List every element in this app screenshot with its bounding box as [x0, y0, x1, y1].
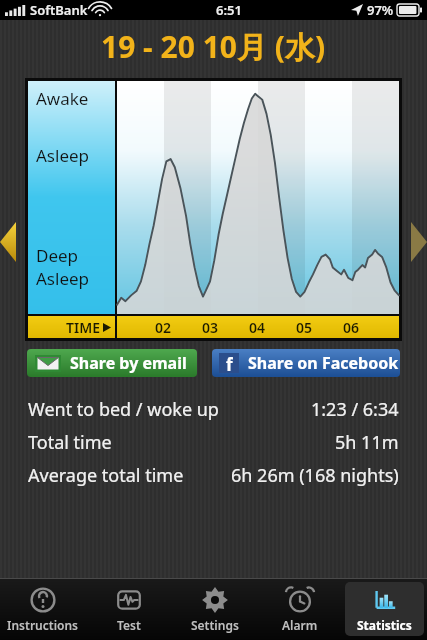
staticText: Statistics: [357, 617, 412, 633]
button[interactable]: Previous night: [0, 222, 16, 262]
staticText: Alarm: [282, 617, 318, 633]
staticText: 1:23 / 6:34: [311, 397, 399, 422]
staticText: Test: [117, 617, 141, 633]
staticText: 03: [202, 318, 219, 337]
staticText: Deep: [36, 244, 79, 267]
staticText: SoftBank: [30, 1, 88, 19]
button[interactable]: Statistics: [345, 582, 424, 636]
staticText: Awake: [36, 87, 89, 110]
staticText: Settings: [191, 617, 239, 633]
button[interactable]: Instructions: [3, 582, 83, 636]
staticText: Total time: [28, 430, 112, 455]
staticText: 04: [249, 318, 266, 337]
staticText: 6h 26m (168 nights): [231, 463, 399, 488]
button[interactable]: Settings: [175, 582, 254, 636]
staticText: 6:51: [216, 1, 242, 19]
staticText: Went to bed / woke up: [28, 397, 219, 422]
staticText: 97%: [367, 1, 394, 19]
staticText: 06: [343, 318, 360, 337]
staticText: Share by email: [70, 352, 187, 374]
staticText: 02: [155, 318, 172, 337]
staticText: Average total time: [28, 463, 184, 488]
staticText: Asleep: [36, 267, 90, 290]
staticText: 05: [296, 318, 313, 337]
staticText: Instructions: [7, 617, 79, 633]
button[interactable]: Share by email: [27, 349, 197, 377]
button[interactable]: Alarm: [260, 582, 339, 636]
staticText: 5h 11m: [335, 430, 399, 455]
button[interactable]: Test: [89, 582, 169, 636]
staticText: 19 - 20 10月 (水): [101, 26, 326, 67]
button[interactable]: Next night: [411, 222, 427, 262]
staticText: f: [226, 353, 233, 373]
button[interactable]: f: [212, 349, 400, 377]
staticText: Share on Facebook: [248, 352, 399, 374]
staticText: TIME: [66, 318, 100, 337]
staticText: Asleep: [36, 144, 90, 167]
